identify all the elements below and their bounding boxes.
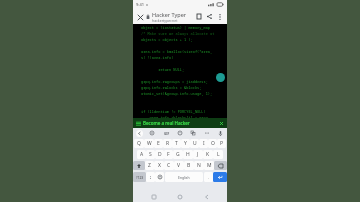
staticText: /* Make sure we always allocate at [141,31,215,37]
staticText: V [177,162,181,169]
staticText: . [208,175,210,180]
staticText: T [175,140,178,147]
button[interactable]: L [213,150,223,159]
button[interactable]: Become a real Hacker [133,118,227,128]
staticText: grpq.info.rwlocks = &blocks; [141,85,202,91]
staticText: F [167,151,170,158]
button[interactable]: Back [201,191,213,202]
button[interactable]: Close [135,12,145,22]
button[interactable]: Bookmark [193,11,204,22]
button[interactable]: V [174,161,184,170]
staticText: ?123 [136,175,144,180]
button[interactable]: Period [204,172,213,182]
button[interactable]: Voice input [216,129,224,137]
button[interactable]: H [183,150,193,159]
button[interactable]: GIF [162,130,171,137]
staticText: K [206,151,210,158]
staticText: D [158,151,162,158]
staticText: grpq.info->blocks[i] = grou [141,115,208,118]
button[interactable]: C [164,161,174,170]
button[interactable]: Y [181,139,190,148]
button[interactable]: Comma and settings [146,172,155,182]
staticText: object = (iostatus) | memory_map [141,25,210,31]
button[interactable]: Share [204,11,215,22]
staticText: if (lldentium != PORCYEL_NULL) [141,109,206,115]
button[interactable]: D [155,150,164,159]
button[interactable]: S [146,150,155,159]
staticText: s( !(area.info) [141,55,174,61]
staticText: U [193,140,197,147]
staticText: B [187,162,191,169]
button[interactable]: More [203,129,211,137]
staticText: E [157,140,160,147]
staticText: English [178,175,190,180]
button[interactable]: M [204,161,214,170]
button[interactable]: X [154,161,164,170]
button[interactable]: J [193,150,203,159]
button[interactable]: F [164,150,173,159]
button[interactable]: G [173,150,183,159]
button[interactable]: Shift [133,161,145,170]
staticText: J [197,151,199,158]
staticText: R [166,140,170,147]
button[interactable]: English [165,172,203,182]
button[interactable]: P [217,139,226,148]
button[interactable]: Themes [148,129,156,137]
button[interactable]: Enter [213,172,227,182]
staticText: I [203,140,205,147]
staticText: Hacker Typer [152,11,187,18]
staticText: area.info = kmalloc(sizeof(*area, [141,49,213,55]
button[interactable]: Backspace [214,161,227,170]
button[interactable]: Translate [189,129,197,137]
button[interactable]: Dismiss banner [218,120,224,126]
staticText: Z [148,162,151,169]
staticText: hackertyper.net [152,18,178,23]
staticText: return NULL; [141,67,185,73]
staticText: A [140,151,144,158]
staticText: X [158,162,161,169]
button[interactable]: ?123 [133,172,146,182]
button[interactable]: I [199,139,208,148]
staticText: Become a real Hacker [143,120,218,126]
staticText: grpq.info.rwgroups = jiaddress; [141,79,208,85]
staticText: Y [184,140,187,147]
button[interactable]: Q [134,139,144,148]
staticText: W [147,140,152,147]
button[interactable]: B [184,161,194,170]
staticText: G [176,151,180,158]
button[interactable]: Expand toolbar [136,130,143,137]
staticText: C [167,162,171,169]
button[interactable]: Home [174,191,186,202]
staticText: GIF [164,132,170,136]
staticText: S [149,151,152,158]
staticText: N [197,162,201,169]
button[interactable]: T [172,139,181,148]
button[interactable]: Recents [148,191,160,202]
staticText: objects = objects + 1 ); [141,37,193,43]
button[interactable]: W [144,139,154,148]
button[interactable]: E [154,139,163,148]
staticText: P [220,140,224,147]
staticText: atomic_set(&group.info.usage, 1); [141,91,213,97]
staticText: M [207,162,212,169]
staticText: L [217,151,220,158]
button[interactable]: Clipboard [176,129,184,137]
staticText: O [211,140,215,147]
staticText: 9:41 [136,2,144,7]
staticText: H [186,151,190,158]
staticText: Q [137,140,141,147]
button[interactable]: K [203,150,213,159]
button[interactable]: Z [145,161,154,170]
button[interactable]: R [163,139,172,148]
button[interactable]: Emoji [155,172,164,182]
button[interactable]: U [190,139,199,148]
button[interactable]: A [137,150,146,159]
button[interactable]: O [208,139,217,148]
button[interactable]: N [194,161,204,170]
button[interactable]: More options [215,12,225,22]
